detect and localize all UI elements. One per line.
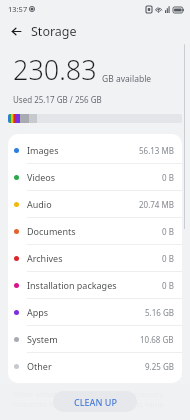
staticText: Storage — [31, 23, 77, 40]
button[interactable]: Other — [8, 353, 182, 379]
staticText: Images — [27, 144, 59, 156]
button[interactable]: Audio — [8, 191, 182, 217]
button[interactable]: Images — [8, 137, 182, 163]
button[interactable]: Archives — [8, 245, 182, 271]
staticText: 13:57 — [8, 4, 28, 14]
staticText: 0 B — [162, 280, 174, 291]
button[interactable]: Videos — [8, 164, 182, 190]
staticText: Archives — [27, 252, 63, 264]
staticText: Audio — [27, 198, 52, 210]
staticText: 56.13 MB — [139, 145, 174, 156]
staticText: Other — [27, 360, 52, 372]
staticText: Documents — [27, 225, 76, 237]
staticText: Installation packages — [27, 279, 117, 291]
staticText: Apps — [27, 306, 49, 318]
staticText: 9.25 GB — [145, 361, 174, 372]
staticText: System — [27, 333, 58, 345]
button[interactable]: Documents — [8, 218, 182, 244]
staticText: 5.16 GB — [145, 307, 174, 318]
staticText: 10.68 GB — [140, 334, 174, 345]
button[interactable]: System — [8, 326, 182, 352]
button[interactable]: Installation packages — [8, 272, 182, 298]
button[interactable]: CLEAN UP — [53, 391, 137, 412]
staticText: Used 25.17 GB / 256 GB — [13, 94, 102, 105]
staticText: 0 B — [162, 226, 174, 237]
staticText: 0 B — [162, 253, 174, 264]
button[interactable]: Apps — [8, 299, 182, 325]
staticText: 230.83 — [13, 51, 97, 88]
staticText: CLEAN UP — [74, 396, 117, 408]
staticText: 20.74 MB — [139, 199, 174, 210]
staticText: Videos — [27, 171, 56, 183]
staticText: GB available — [102, 73, 152, 85]
staticText: Other includes caches, logs, and necessa… — [13, 389, 177, 409]
button[interactable]: Back — [6, 21, 26, 41]
staticText: 0 B — [162, 172, 174, 183]
